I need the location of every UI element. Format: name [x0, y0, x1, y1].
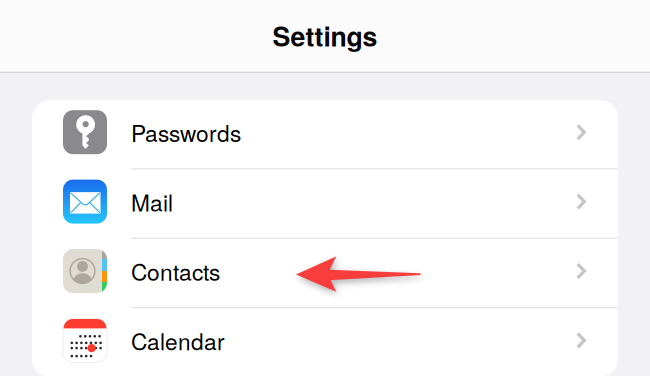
staticText: Calendar	[131, 324, 225, 357]
button[interactable]: Mail	[32, 169, 618, 238]
button[interactable]: Contacts	[32, 239, 618, 307]
button[interactable]: Passwords	[32, 100, 618, 168]
staticText: Passwords	[131, 116, 241, 148]
staticText: Settings	[272, 16, 377, 55]
staticText: Contacts	[131, 255, 220, 287]
button[interactable]: Calendar	[32, 308, 618, 376]
staticText: Mail	[131, 185, 173, 218]
